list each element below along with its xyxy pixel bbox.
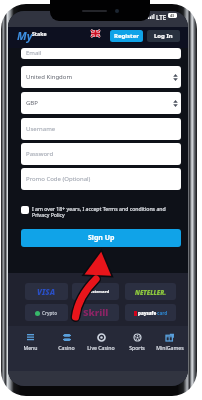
staticText: Sign Up <box>88 233 115 243</box>
staticText: I am over 18+ years, I accept Terms and … <box>32 205 181 218</box>
button[interactable]: Crypto <box>25 304 68 321</box>
staticText: Live Casino <box>87 344 115 351</box>
button[interactable]: Skrill <box>72 304 119 321</box>
button[interactable]: NETELLER. <box>125 283 176 300</box>
staticText: astercard <box>90 289 109 294</box>
staticText: NETELLER. <box>135 288 167 296</box>
button[interactable]: Promo Code (Optional) <box>21 168 181 190</box>
button[interactable]: United Kingdom <box>21 66 181 88</box>
staticText: Casino <box>58 344 75 351</box>
button[interactable]: Sports <box>116 331 158 364</box>
staticText: MiniGames <box>156 344 184 351</box>
staticText: Register <box>114 32 139 40</box>
button[interactable]: Log In <box>147 30 180 42</box>
button[interactable]: Menu <box>9 331 51 364</box>
staticText: Email <box>26 49 42 57</box>
staticText: Sports <box>129 344 145 351</box>
button[interactable]: Language <box>91 30 100 37</box>
staticText: Crypto <box>42 310 58 316</box>
staticText: LTE <box>156 13 167 21</box>
button[interactable]: Email <box>21 48 181 59</box>
staticText: Promo Code (Optional) <box>26 175 91 183</box>
button[interactable]: VISA <box>25 283 68 300</box>
button[interactable]: Password <box>21 143 181 165</box>
staticText: paysafe <box>138 310 157 316</box>
staticText: Stake <box>32 30 47 37</box>
button[interactable]: paysafe <box>125 304 176 321</box>
staticText: United Kingdom <box>26 73 73 81</box>
button[interactable]: I am over 18+ years, I accept Terms and … <box>21 205 181 218</box>
button[interactable]: Register <box>110 30 143 42</box>
staticText: GBP <box>26 99 38 107</box>
button[interactable]: GBP <box>21 92 181 114</box>
button[interactable]: astercard <box>72 283 119 300</box>
staticText: My <box>17 28 33 43</box>
staticText: VISA <box>37 286 56 297</box>
button[interactable]: Sign Up <box>21 229 181 247</box>
button[interactable]: Username <box>21 118 181 140</box>
staticText: Password <box>26 150 54 158</box>
staticText: Log In <box>154 32 173 40</box>
staticText: Menu <box>23 344 38 351</box>
button[interactable]: Live Casino <box>80 331 122 364</box>
staticText: Skrill <box>83 306 109 319</box>
button[interactable]: MyStake home <box>17 27 33 42</box>
button[interactable]: Casino <box>45 331 87 364</box>
staticText: card <box>157 310 168 316</box>
staticText: 43 <box>170 13 175 18</box>
button[interactable]: MiniGames <box>149 331 188 364</box>
staticText: Username <box>26 125 56 133</box>
